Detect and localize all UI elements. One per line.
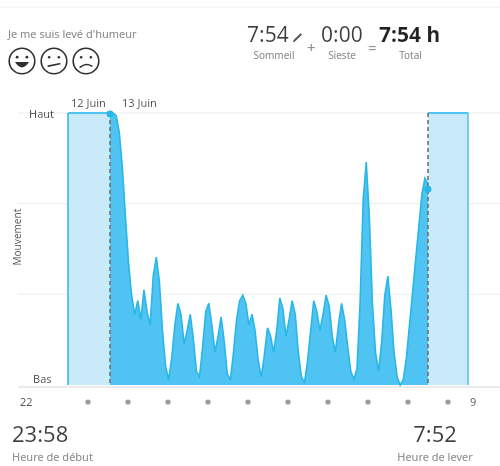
staticText: Heure de lever bbox=[397, 449, 473, 464]
staticText: = bbox=[368, 37, 377, 57]
staticText: Je me suis levé d'humeur bbox=[8, 26, 137, 41]
button[interactable]: Humeur neutre bbox=[40, 47, 68, 75]
staticText: 9 bbox=[470, 394, 477, 409]
button[interactable]: 0:00 bbox=[318, 20, 366, 63]
staticText: Heure de début bbox=[12, 449, 93, 464]
staticText: Haut bbox=[29, 106, 55, 121]
staticText: 13 Juin bbox=[122, 95, 157, 110]
staticText: Bas bbox=[33, 371, 52, 386]
staticText: Sommeil bbox=[253, 48, 295, 62]
staticText: 7:54 h bbox=[379, 20, 441, 49]
button[interactable]: Haut bbox=[0, 0, 500, 466]
staticText: Mouvement bbox=[9, 208, 23, 265]
button[interactable]: 7:54 h bbox=[379, 20, 441, 63]
staticText: Sieste bbox=[328, 48, 356, 62]
staticText: 0:00 bbox=[321, 20, 363, 49]
button[interactable]: Humeur bonne bbox=[8, 47, 36, 75]
staticText: 7:52 bbox=[413, 418, 457, 448]
staticText: 23:58 bbox=[12, 418, 69, 448]
button[interactable]: Humeur mauvaise bbox=[72, 47, 100, 75]
button[interactable]: 7:54 bbox=[243, 20, 305, 63]
staticText: 22 bbox=[20, 394, 33, 409]
staticText: 12 Juin bbox=[71, 95, 106, 110]
staticText: + bbox=[307, 37, 316, 57]
staticText: 7:54 bbox=[247, 20, 289, 49]
staticText: Total bbox=[399, 48, 422, 62]
